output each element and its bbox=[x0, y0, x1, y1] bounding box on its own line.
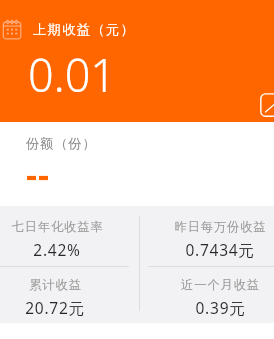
button[interactable]: 七日年化收益率 bbox=[0, 219, 122, 260]
button[interactable]: 近一个月收益 bbox=[155, 277, 274, 318]
staticText: 0.01 bbox=[28, 44, 117, 105]
staticText: 七日年化收益率 bbox=[11, 219, 104, 234]
staticText: 20.72元 bbox=[25, 297, 85, 318]
staticText: 0.39元 bbox=[195, 297, 246, 318]
staticText: 0.7434元 bbox=[185, 239, 255, 260]
staticText: 上期收益（元） bbox=[33, 21, 136, 38]
staticText: 昨日每万份收益 bbox=[174, 219, 267, 234]
staticText: 累计收益 bbox=[29, 277, 82, 292]
button[interactable]: 查看详情 bbox=[260, 93, 274, 117]
button[interactable]: 昨日每万份收益 bbox=[155, 219, 274, 260]
staticText: 2.42% bbox=[33, 239, 81, 260]
staticText: 份额（份） bbox=[26, 135, 97, 152]
staticText: 近一个月收益 bbox=[181, 277, 260, 292]
button[interactable]: 累计收益 bbox=[0, 277, 120, 318]
